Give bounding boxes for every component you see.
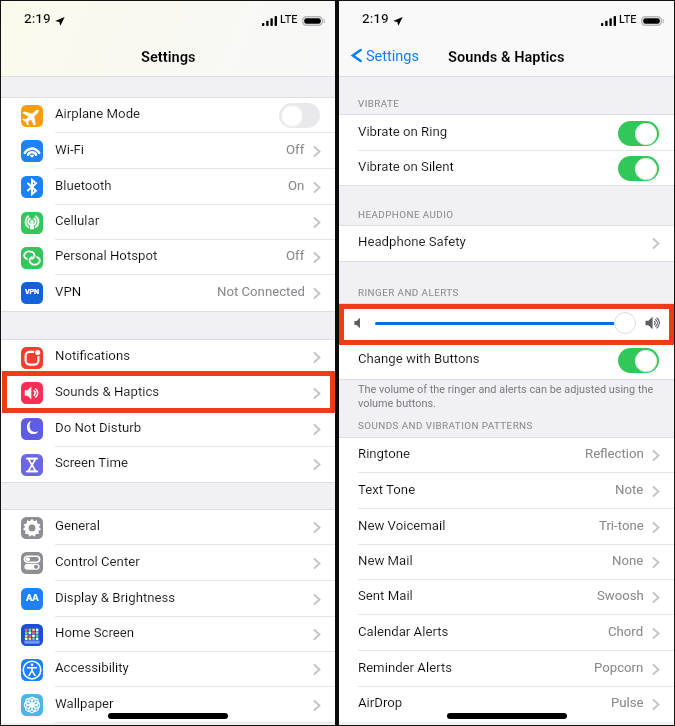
button[interactable]: Reminder Alerts xyxy=(339,651,674,687)
staticText: HEADPHONE AUDIO xyxy=(358,209,454,220)
staticText: Chord xyxy=(608,624,644,639)
staticText: Off xyxy=(286,248,305,263)
button[interactable]: Accessibility xyxy=(1,652,335,687)
button[interactable]: New Mail xyxy=(339,545,674,580)
button[interactable]: Calendar Alerts xyxy=(339,615,674,651)
staticText: Reflection xyxy=(585,446,644,461)
staticText: AirDrop xyxy=(358,695,403,710)
staticText: Vibrate on Ring xyxy=(358,124,448,139)
staticText: Tri-tone xyxy=(599,518,644,533)
staticText: Airplane Mode xyxy=(55,106,141,121)
staticText: Sounds & Haptics xyxy=(448,48,565,65)
staticText: Settings xyxy=(366,48,419,65)
staticText: Bluetooth xyxy=(55,178,112,193)
staticText: Vibrate on Silent xyxy=(358,159,454,174)
staticText: Calendar Alerts xyxy=(358,624,449,639)
staticText: Headphone Safety xyxy=(358,234,466,249)
staticText: AA xyxy=(26,592,39,603)
button[interactable]: On xyxy=(618,348,659,373)
staticText: 2:19 xyxy=(24,10,51,26)
staticText: Not Connected xyxy=(217,284,305,299)
staticText: Note xyxy=(615,482,644,497)
button[interactable]: Vibrate on Ring xyxy=(339,115,674,151)
staticText: VPN xyxy=(25,287,39,295)
staticText: New Voicemail xyxy=(358,518,446,533)
button[interactable]: VPN xyxy=(1,275,335,311)
staticText: Control Center xyxy=(55,554,140,569)
staticText: General xyxy=(55,518,100,533)
staticText: Settings xyxy=(141,48,196,65)
button[interactable]: On xyxy=(618,121,659,146)
button[interactable]: AA xyxy=(1,581,335,617)
staticText: Change with Buttons xyxy=(358,351,480,366)
button[interactable]: Do Not Disturb xyxy=(1,411,335,447)
staticText: VPN xyxy=(55,284,82,299)
staticText: Wi-Fi xyxy=(55,142,85,157)
staticText: Accessibility xyxy=(55,660,129,675)
staticText: The volume of the ringer and alerts can … xyxy=(358,383,666,410)
staticText: Personal Hotspot xyxy=(55,248,158,263)
staticText: New Mail xyxy=(358,553,413,568)
button[interactable]: Text Tone xyxy=(339,473,674,509)
staticText: Reminder Alerts xyxy=(358,660,453,675)
button[interactable]: Notifications xyxy=(1,340,335,375)
staticText: LTE xyxy=(619,13,637,26)
button[interactable]: Cellular xyxy=(1,205,335,240)
button[interactable]: Wi-Fi xyxy=(1,133,335,169)
staticText: Screen Time xyxy=(55,455,128,470)
staticText: Home Screen xyxy=(55,625,135,640)
button[interactable]: Sounds & Haptics xyxy=(1,375,335,411)
button[interactable]: Headphone Safety xyxy=(339,226,674,261)
button[interactable]: Screen Time xyxy=(1,447,335,482)
staticText: On xyxy=(288,178,305,193)
staticText: Sounds & Haptics xyxy=(55,384,160,399)
button[interactable]: Vibrate on Silent xyxy=(339,151,674,185)
button[interactable]: Control Center xyxy=(1,545,335,581)
staticText: Cellular xyxy=(55,213,100,228)
staticText: Pulse xyxy=(611,695,644,710)
staticText: Display & Brightness xyxy=(55,590,176,605)
staticText: Off xyxy=(286,142,305,157)
button[interactable]: Home Screen xyxy=(1,617,335,652)
button[interactable]: Wallpaper xyxy=(1,687,335,723)
button[interactable]: Sent Mail xyxy=(339,580,674,615)
staticText: Popcorn xyxy=(594,660,644,675)
staticText: RINGER AND ALERTS xyxy=(358,287,459,298)
button[interactable]: Settings xyxy=(351,46,419,65)
button[interactable]: AirDrop xyxy=(339,687,674,722)
button[interactable]: Airplane Mode xyxy=(1,98,335,133)
staticText: None xyxy=(612,553,644,568)
staticText: 2:19 xyxy=(362,10,389,26)
button[interactable]: General xyxy=(1,510,335,545)
button[interactable]: Off xyxy=(279,103,320,128)
staticText: SOUNDS AND VIBRATION PATTERNS xyxy=(358,420,533,431)
staticText: VIBRATE xyxy=(358,98,400,109)
staticText: Do Not Disturb xyxy=(55,420,142,435)
button[interactable]: On xyxy=(618,156,659,181)
button[interactable]: New Voicemail xyxy=(339,509,674,545)
button[interactable]: Change with Buttons xyxy=(339,342,674,379)
button[interactable]: Bluetooth xyxy=(1,169,335,205)
button[interactable]: Personal Hotspot xyxy=(1,240,335,275)
staticText: Notifications xyxy=(55,348,130,363)
staticText: LTE xyxy=(280,13,298,26)
staticText: Sent Mail xyxy=(358,588,413,603)
staticText: Wallpaper xyxy=(55,696,114,711)
staticText: Ringtone xyxy=(358,446,411,461)
staticText: Swoosh xyxy=(597,588,644,603)
staticText: Text Tone xyxy=(358,482,416,497)
button[interactable]: Ringtone xyxy=(339,438,674,473)
